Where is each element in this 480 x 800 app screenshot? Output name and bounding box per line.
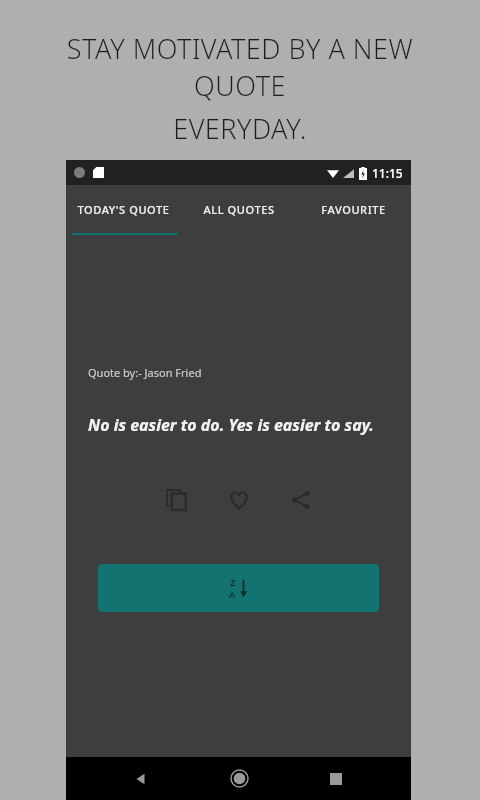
button[interactable]: ALL QUOTES xyxy=(181,185,296,233)
button[interactable]: Sort Z to A xyxy=(98,564,379,612)
button[interactable]: Share xyxy=(277,476,325,524)
button[interactable]: Home xyxy=(217,757,261,800)
staticText: TODAY'S QUOTE xyxy=(77,202,170,217)
button[interactable]: Back xyxy=(119,757,163,800)
button[interactable]: Copy quote xyxy=(153,476,201,524)
staticText: STAY MOTIVATED BY A NEW QUOTE xyxy=(18,30,462,104)
staticText: Z xyxy=(230,576,236,588)
button[interactable]: FAVOURITE xyxy=(296,185,411,233)
button[interactable]: TODAY'S QUOTE xyxy=(66,185,181,233)
staticText: Quote by:- Jason Fried xyxy=(88,365,202,380)
staticText: No is easier to do. Yes is easier to say… xyxy=(88,414,374,436)
button[interactable]: Favourite xyxy=(215,476,263,524)
button[interactable]: Recent apps xyxy=(314,757,358,800)
staticText: A xyxy=(229,588,236,600)
staticText: 11:15 xyxy=(372,165,403,181)
staticText: EVERYDAY. xyxy=(173,110,307,147)
staticText: FAVOURITE xyxy=(321,202,386,217)
staticText: ALL QUOTES xyxy=(203,202,275,217)
